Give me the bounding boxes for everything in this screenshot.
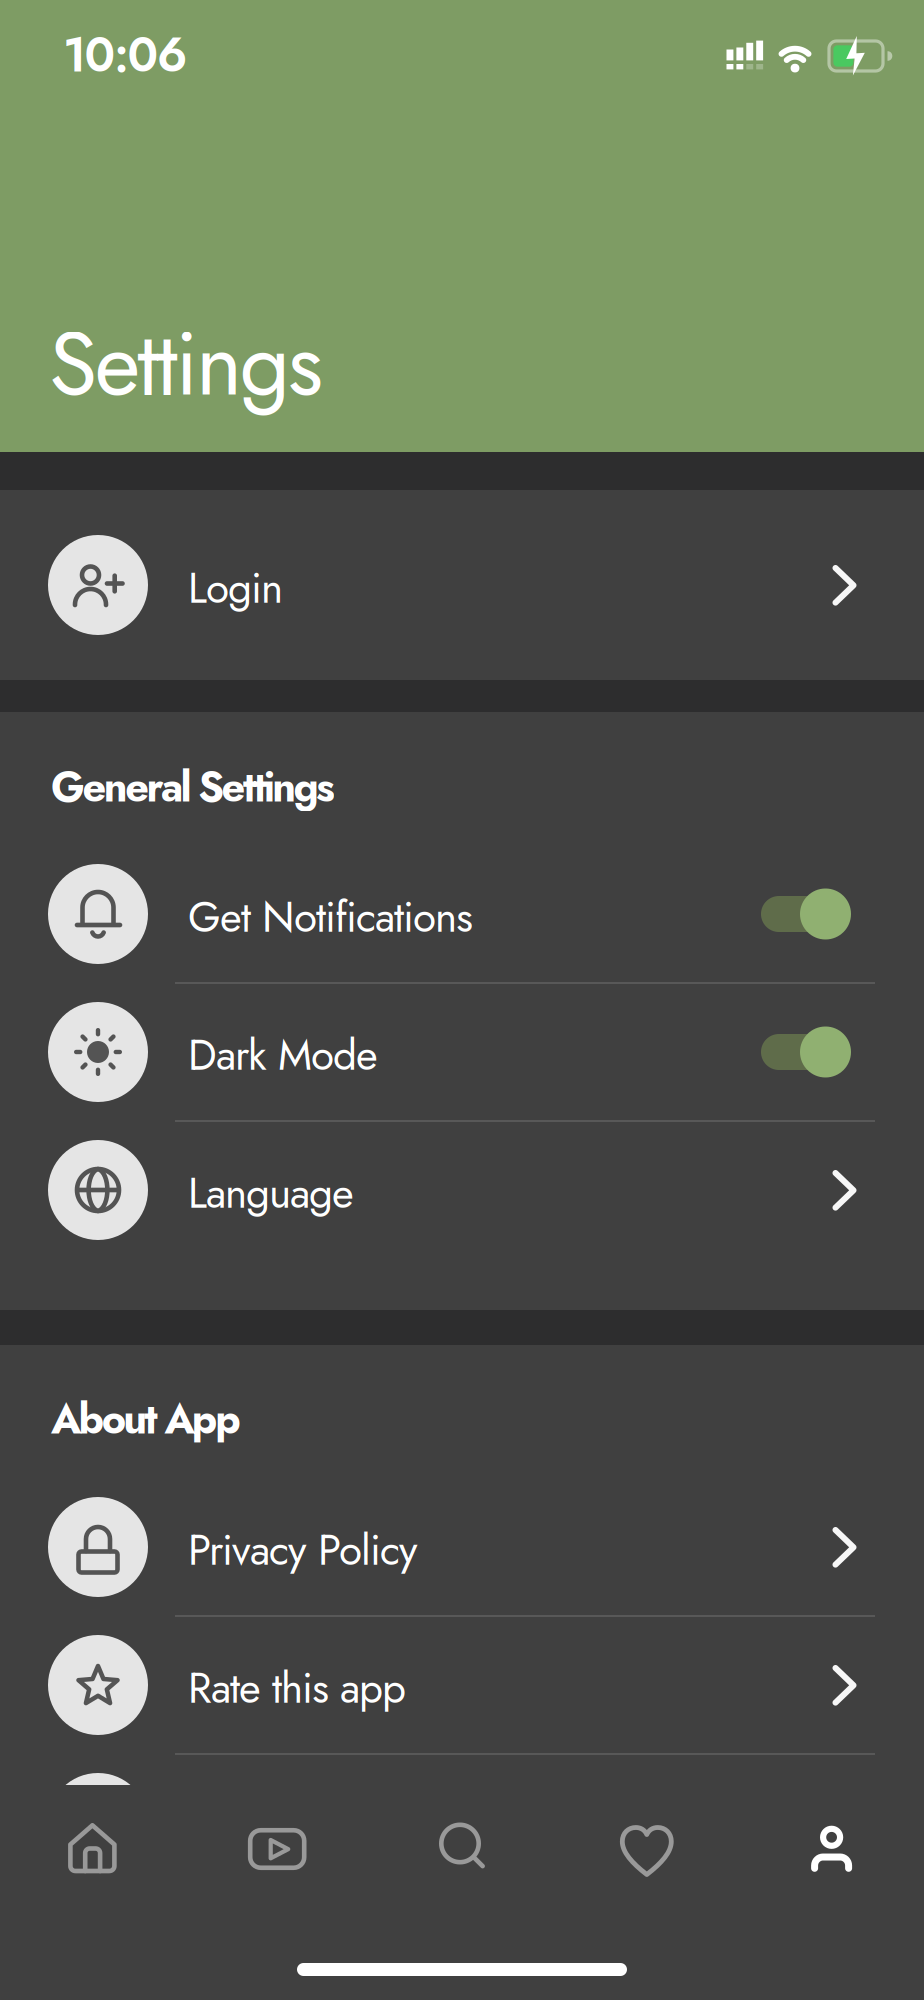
- button[interactable]: Rate this app: [0, 1616, 924, 1754]
- button[interactable]: [185, 1785, 369, 2000]
- button[interactable]: [555, 1785, 739, 2000]
- staticText: About App: [51, 1389, 241, 1449]
- button[interactable]: Dark Mode: [0, 983, 924, 1121]
- staticText: 10:06: [63, 21, 187, 89]
- staticText: Dark Mode: [188, 1025, 378, 1085]
- button[interactable]: [740, 1785, 924, 2000]
- staticText: Privacy Policy: [188, 1520, 418, 1580]
- button[interactable]: [370, 1785, 554, 2000]
- button[interactable]: [0, 1785, 184, 2000]
- staticText: Get Notifications: [188, 887, 473, 947]
- staticText: Rate this app: [188, 1658, 406, 1718]
- staticText: Settings: [49, 300, 324, 428]
- staticText: Language: [188, 1163, 354, 1223]
- button[interactable]: Get Notifications: [0, 845, 924, 983]
- button[interactable]: Login: [0, 490, 924, 680]
- staticText: Login: [188, 558, 283, 618]
- staticText: General Settings: [51, 757, 335, 817]
- button[interactable]: Language: [0, 1121, 924, 1259]
- button[interactable]: Privacy Policy: [0, 1478, 924, 1616]
